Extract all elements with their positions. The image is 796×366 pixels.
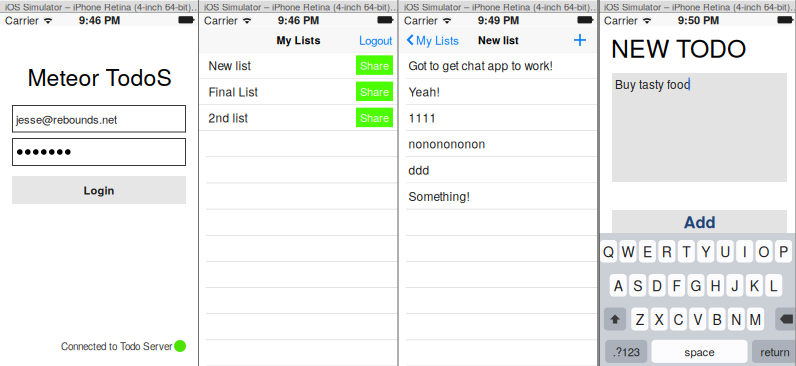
staticText: X (655, 309, 664, 329)
staticText: C (673, 309, 683, 329)
button[interactable]: V (689, 307, 706, 330)
staticText: Z (636, 309, 644, 329)
staticText: Final List (208, 83, 257, 100)
staticText: Connected to Todo Server (61, 339, 172, 353)
button[interactable]: New list (199, 52, 398, 79)
staticText: Q (603, 241, 614, 261)
button[interactable]: jesse@rebounds.net (12, 105, 186, 132)
button[interactable]: Delete (775, 307, 796, 330)
staticText: New list (208, 57, 250, 74)
staticText: G (690, 275, 701, 295)
button[interactable]: ddd (399, 157, 598, 183)
staticText: iOS Simulator – iPhone Retina (4-inch 64… (404, 0, 599, 13)
button[interactable]: D (649, 274, 666, 296)
staticText: R (662, 241, 672, 261)
staticText: Share (360, 110, 389, 125)
button[interactable]: Add todo (568, 27, 592, 53)
button[interactable]: Add (612, 210, 787, 233)
staticText: ddd (408, 161, 429, 178)
staticText: J (731, 275, 738, 295)
staticText: Carrier (204, 12, 238, 27)
staticText: Share (360, 83, 389, 99)
staticText: 9:46 PM (79, 12, 120, 28)
button[interactable]: Z (631, 307, 648, 330)
staticText: 9:46 PM (278, 12, 319, 28)
button[interactable]: K (746, 274, 763, 296)
button[interactable]: X (651, 307, 668, 330)
staticText: Carrier (404, 12, 438, 27)
button[interactable]: E (639, 240, 656, 262)
staticText: Share (360, 57, 389, 73)
staticText: Yeah! (408, 83, 439, 100)
button[interactable]: Login (12, 176, 186, 204)
staticText: Logout (359, 32, 392, 48)
staticText: T (682, 241, 690, 261)
button[interactable]: T (678, 240, 695, 262)
button[interactable]: C (670, 307, 687, 330)
staticText: NEW TODO (611, 29, 746, 65)
button[interactable]: 1111 (399, 105, 598, 131)
button[interactable]: I (736, 240, 753, 262)
staticText: nononononon (408, 135, 485, 152)
staticText: iOS Simulator – iPhone Retina (4-inch 64… (604, 0, 796, 13)
button[interactable]: space (651, 340, 747, 363)
button[interactable]: O (756, 240, 773, 262)
button[interactable]: .?123 (605, 340, 647, 363)
button[interactable]: Shift (604, 307, 626, 330)
staticText: M (750, 309, 762, 329)
button[interactable]: A (610, 274, 627, 296)
button[interactable]: S (629, 274, 646, 296)
staticText: Meteor TodoS (27, 60, 171, 92)
staticText: U (720, 241, 730, 261)
button[interactable]: N (728, 307, 745, 330)
button[interactable]: J (726, 274, 743, 296)
button[interactable]: nononononon (399, 131, 598, 157)
staticText: 1111 (408, 109, 436, 126)
staticText: I (743, 241, 747, 261)
staticText: Add (683, 210, 715, 233)
staticText: A (614, 275, 623, 295)
button[interactable]: Yeah! (399, 79, 598, 105)
staticText: .?123 (613, 343, 640, 359)
button[interactable]: Got to get chat app to work! (399, 52, 598, 79)
staticText: Y (701, 241, 710, 261)
staticText: iOS Simulator – iPhone Retina (4-inch 64… (5, 0, 200, 13)
button[interactable]: Y (697, 240, 714, 262)
staticText: O (759, 241, 770, 261)
staticText: P (779, 241, 788, 261)
button[interactable]: Something! (399, 183, 598, 209)
staticText: S (633, 275, 642, 295)
staticText: Got to get chat app to work! (408, 57, 552, 74)
staticText: Carrier (604, 12, 638, 27)
button[interactable]: Buy tasty food (612, 73, 787, 182)
staticText: return (760, 343, 789, 359)
staticText: K (750, 275, 759, 295)
staticText: space (684, 343, 714, 359)
staticText: Carrier (5, 12, 39, 27)
button[interactable]: B (708, 307, 725, 330)
button[interactable] (12, 138, 186, 166)
button[interactable]: return (752, 340, 796, 363)
staticText: Buy tasty food (615, 76, 691, 92)
button[interactable]: W (619, 240, 636, 262)
staticText: V (693, 309, 702, 329)
button[interactable]: 2nd list (199, 105, 398, 131)
button[interactable]: M (747, 307, 764, 330)
button[interactable]: Q (600, 240, 617, 262)
button[interactable]: L (765, 274, 782, 296)
button[interactable]: My Lists (402, 27, 454, 53)
staticText: B (712, 309, 721, 329)
button[interactable]: Final List (199, 79, 398, 105)
button[interactable]: Logout (353, 27, 397, 53)
button[interactable]: U (717, 240, 734, 262)
staticText: iOS Simulator – iPhone Retina (4-inch 64… (204, 0, 399, 13)
staticText: L (770, 275, 778, 295)
button[interactable]: R (658, 240, 675, 262)
staticText: My Lists (416, 32, 459, 48)
button[interactable]: H (707, 274, 724, 296)
button[interactable]: F (668, 274, 685, 296)
staticText: W (621, 241, 634, 261)
button[interactable]: P (775, 240, 792, 262)
button[interactable]: G (687, 274, 704, 296)
staticText: N (731, 309, 741, 329)
